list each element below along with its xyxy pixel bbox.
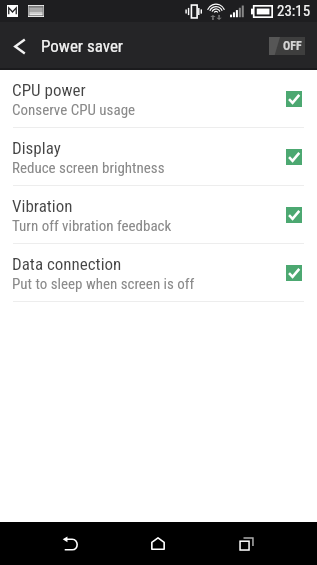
staticText: Data connection [12, 254, 122, 274]
staticText: Display [12, 138, 61, 158]
staticText: Conserve CPU usage [12, 101, 136, 119]
staticText: OFF [283, 39, 302, 53]
button[interactable]: Home [114, 522, 202, 565]
staticText: Turn off vibration feedback [12, 217, 172, 235]
button[interactable]: Back [0, 22, 40, 70]
button[interactable]: Display [0, 128, 317, 185]
staticText: 23:15 [277, 2, 311, 20]
staticText: CPU power [12, 80, 86, 100]
button[interactable]: CPU power [0, 70, 317, 127]
staticText: Put to sleep when screen is off [12, 275, 195, 293]
button[interactable]: Data connection [0, 244, 317, 301]
button[interactable]: Recent apps [202, 522, 290, 565]
button[interactable]: Back [26, 522, 114, 565]
staticText: Power saver [41, 36, 124, 56]
button[interactable]: Vibration [0, 186, 317, 243]
staticText: Reduce screen brightness [12, 159, 165, 177]
button[interactable]: Power saver switch, off [269, 37, 305, 55]
staticText: Vibration [12, 196, 73, 216]
